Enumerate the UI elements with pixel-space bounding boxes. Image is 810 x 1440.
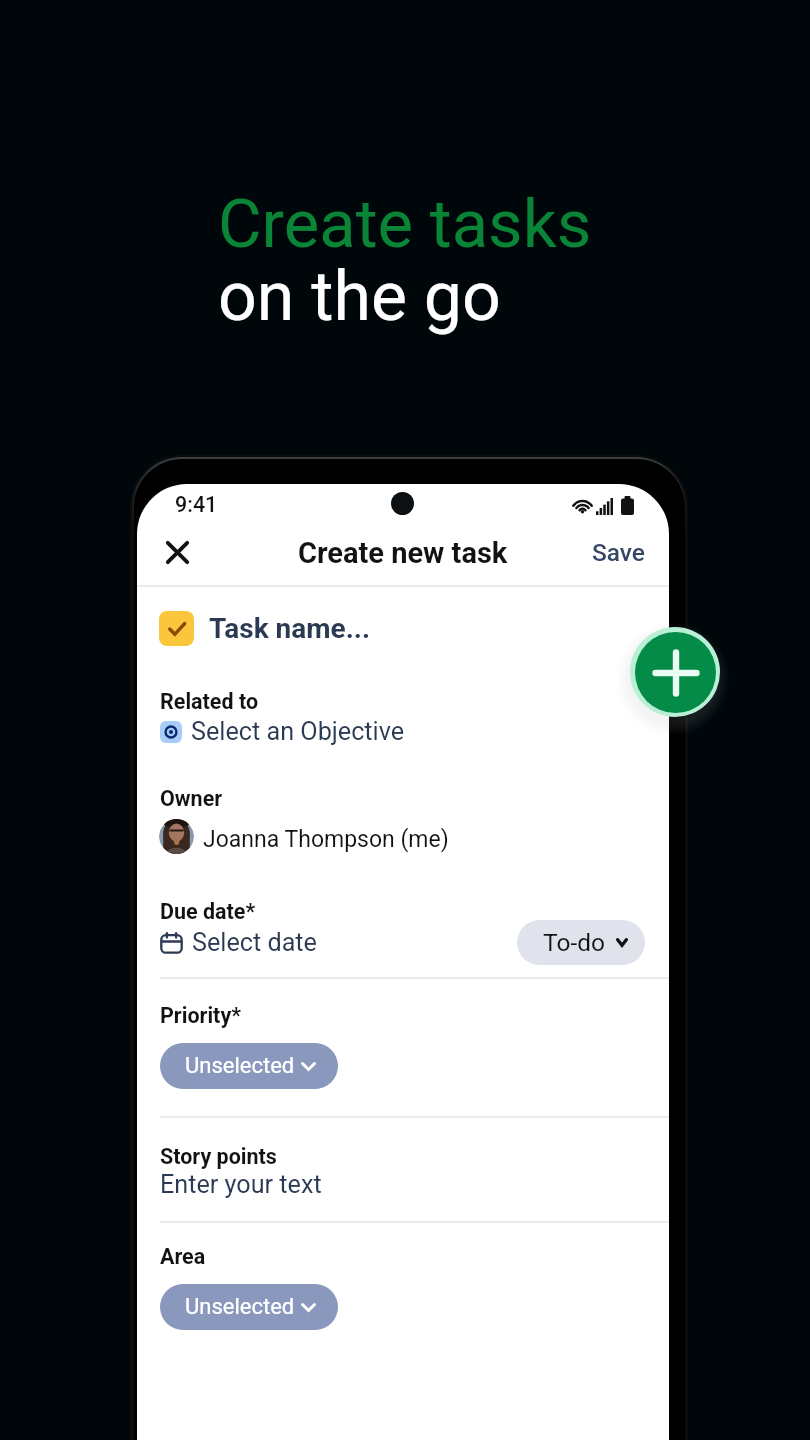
staticText: Task name...	[209, 612, 370, 645]
staticText: Save	[592, 538, 645, 567]
staticText: Create new task	[298, 536, 508, 570]
button[interactable]: Unselected	[160, 1284, 338, 1330]
staticText: Priority*	[160, 1003, 241, 1028]
button[interactable]: Enter your text	[160, 1170, 322, 1200]
button[interactable]: To-do	[517, 920, 645, 965]
staticText: Joanna Thompson (me)	[203, 826, 449, 853]
staticText: Story points	[160, 1144, 277, 1169]
staticText: on the go	[218, 257, 501, 337]
button[interactable]: Select date	[160, 928, 317, 958]
staticText: Area	[160, 1244, 206, 1269]
staticText: Select an Objective	[191, 717, 405, 747]
button[interactable]: Select an Objective	[160, 717, 405, 747]
button[interactable]: Joanna Thompson (me)	[159, 814, 429, 856]
button[interactable]: Close	[151, 526, 203, 578]
staticText: Select date	[192, 928, 317, 958]
staticText: Due date*	[160, 899, 256, 924]
staticText: To-do	[543, 928, 605, 957]
staticText: 9:41	[175, 492, 218, 517]
staticText: Unselected	[185, 1053, 295, 1079]
button[interactable]: Unselected	[160, 1043, 338, 1089]
button[interactable]: Create new task	[630, 627, 720, 717]
button[interactable]: Task complete	[159, 611, 194, 646]
button[interactable]: Save	[580, 526, 656, 578]
staticText: Unselected	[185, 1294, 295, 1320]
staticText: Related to	[160, 689, 259, 714]
staticText: Owner	[160, 786, 223, 811]
staticText: Create tasks	[218, 185, 592, 264]
